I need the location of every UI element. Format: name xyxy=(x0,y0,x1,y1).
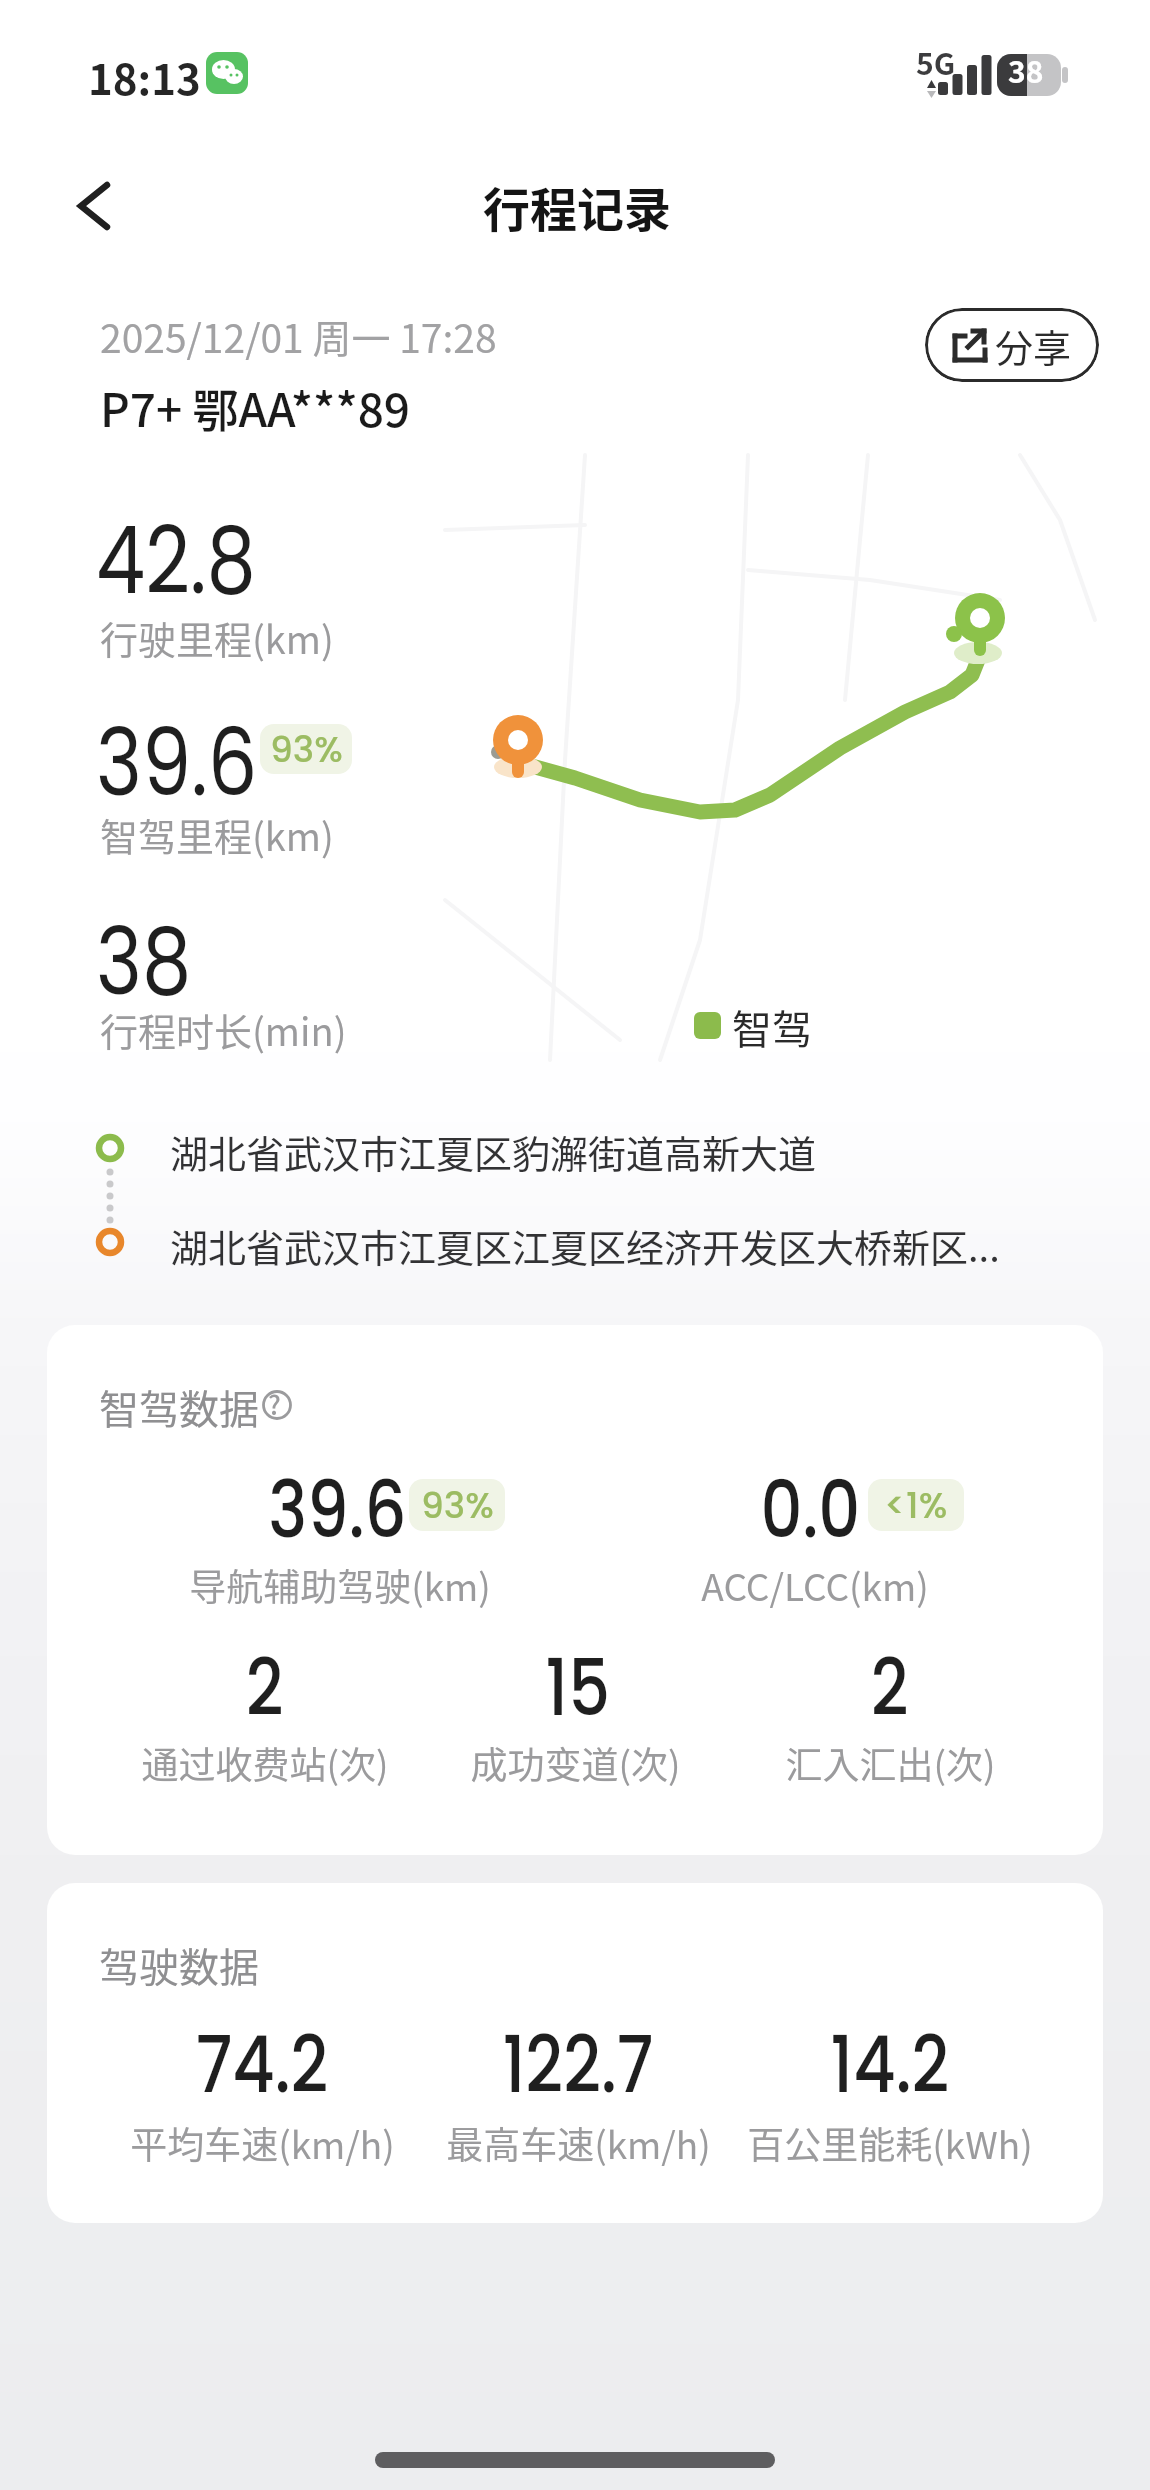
staticText: 93% xyxy=(421,1480,494,1530)
staticText: 42.8 xyxy=(96,495,256,625)
staticText: 行程记录 xyxy=(483,172,671,240)
button[interactable] xyxy=(47,1883,1103,2223)
staticText: 2025/12/01 周一 17:28 xyxy=(100,308,497,364)
staticText: 18:13 xyxy=(88,46,201,107)
staticText: <1% xyxy=(884,1480,948,1530)
staticText: 14.2 xyxy=(830,2010,950,2119)
button[interactable] xyxy=(262,1390,292,1420)
staticText: 分享 xyxy=(995,318,1072,373)
staticText: ? xyxy=(268,1385,281,1423)
staticText: 智驾里程(km) xyxy=(100,807,334,862)
staticText: ACC/LCC(km) xyxy=(701,1558,929,1612)
staticText: 2 xyxy=(871,1633,909,1742)
staticText: 平均车速(km/h) xyxy=(130,2116,395,2170)
staticText: 最高车速(km/h) xyxy=(446,2116,711,2170)
staticText: 行驶里程(km) xyxy=(100,610,334,665)
button[interactable]: 分享 xyxy=(925,308,1099,382)
staticText: 38 xyxy=(1008,48,1044,91)
staticText: 湖北省武汉市江夏区江夏区经济开发区大桥新区... xyxy=(170,1218,1000,1273)
button[interactable] xyxy=(56,168,132,244)
staticText: 百公里能耗(kWh) xyxy=(747,2116,1033,2170)
staticText: 39.6 xyxy=(268,1455,407,1564)
staticText: 行程时长(min) xyxy=(100,1002,347,1057)
staticText: 2 xyxy=(246,1633,284,1742)
staticText: 智驾 xyxy=(732,998,812,1056)
staticText: 导航辅助驾驶(km) xyxy=(189,1558,491,1612)
staticText: 成功变道(次) xyxy=(470,1736,681,1790)
staticText: 0.0 xyxy=(760,1455,860,1564)
staticText: 湖北省武汉市江夏区豹澥街道高新大道 xyxy=(170,1124,817,1179)
staticText: 通过收费站(次) xyxy=(141,1736,389,1790)
staticText: 智驾数据 xyxy=(99,1378,259,1436)
staticText: 驾驶数据 xyxy=(99,1936,259,1994)
staticText: P7+ 鄂AA***89 xyxy=(100,374,411,441)
staticText: 汇入汇出(次) xyxy=(785,1736,996,1790)
staticText: 15 xyxy=(545,1633,611,1742)
staticText: 39.6 xyxy=(96,697,257,827)
staticText: 5G xyxy=(916,40,956,83)
staticText: 38 xyxy=(96,896,192,1026)
button[interactable] xyxy=(47,1325,1103,1855)
staticText: 93% xyxy=(270,724,343,774)
staticText: 74.2 xyxy=(196,2010,328,2119)
staticText: 122.7 xyxy=(502,2010,654,2119)
